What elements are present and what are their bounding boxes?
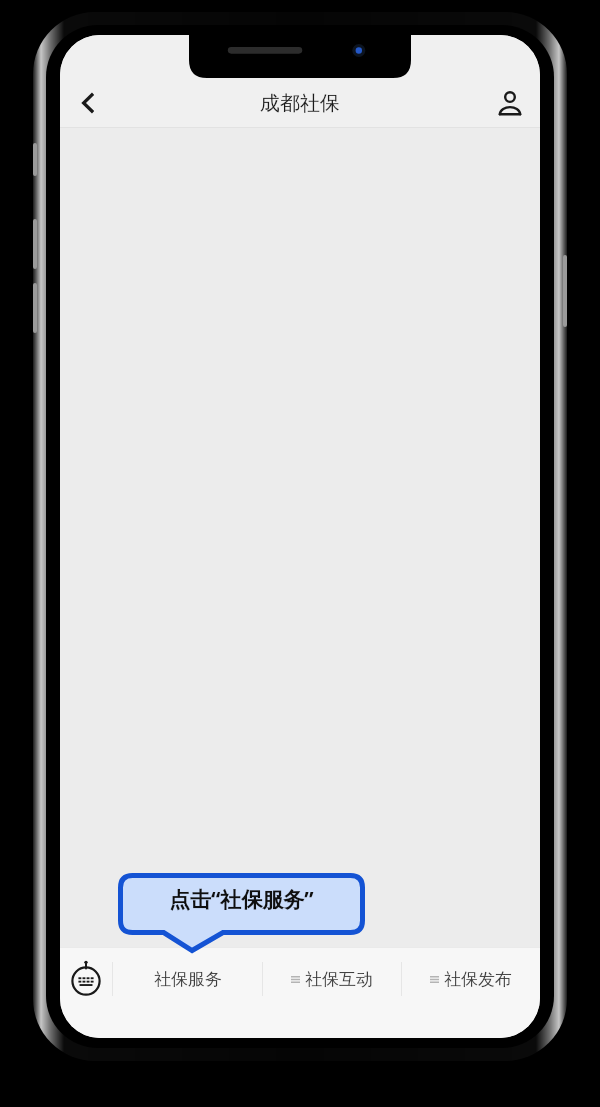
staticText: 点击“社保服务” xyxy=(169,885,314,914)
button[interactable]: 社保互动 xyxy=(263,948,401,1010)
button[interactable]: 社保服务 xyxy=(113,948,262,1010)
button[interactable]: 点击“社保服务” xyxy=(118,873,365,953)
staticText: 社保互动 xyxy=(305,969,373,990)
button[interactable]: Profile xyxy=(488,81,532,125)
staticText: 社保发布 xyxy=(444,969,512,990)
button[interactable]: 社保发布 xyxy=(402,948,540,1010)
staticText: 社保服务 xyxy=(154,969,222,990)
button[interactable]: Back xyxy=(66,81,110,125)
button[interactable]: Keyboard xyxy=(60,948,112,1010)
staticText: 成都社保 xyxy=(260,91,340,116)
